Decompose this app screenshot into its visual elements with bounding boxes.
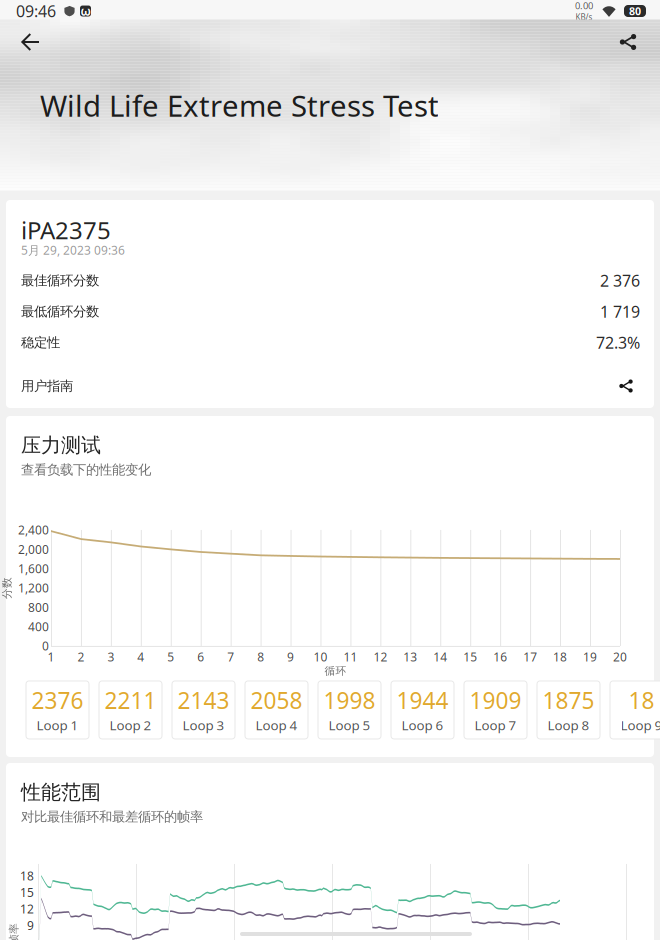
button[interactable]: 2211 — [99, 681, 162, 739]
staticText: 循环 — [324, 664, 346, 677]
staticText: ω — [80, 3, 90, 19]
staticText: 2,400 — [18, 522, 49, 538]
staticText: 18 — [20, 868, 34, 884]
staticText: 查看负载下的性能变化 — [21, 462, 151, 478]
button[interactable]: 用户指南 — [6, 371, 654, 401]
staticText: 1 719 — [600, 301, 640, 322]
staticText: 15 — [463, 649, 477, 665]
staticText: 17 — [523, 649, 537, 665]
staticText: 8 — [257, 649, 264, 665]
staticText: 5 — [167, 649, 174, 665]
button[interactable]: 1998 — [318, 681, 381, 739]
staticText: 80 — [629, 4, 641, 18]
staticText: 6 — [197, 649, 204, 665]
staticText: 0 — [42, 638, 49, 654]
staticText: 5月 29, 2023 09:36 — [21, 242, 125, 258]
staticText: 对比最佳循环和最差循环的帧率 — [21, 809, 203, 825]
staticText: 2 376 — [600, 270, 640, 291]
staticText: 1875 — [542, 685, 594, 715]
staticText: 9 — [287, 649, 294, 665]
staticText: Loop 9 — [620, 716, 660, 734]
staticText: Wild Life Extreme Stress Test — [40, 86, 439, 125]
staticText: KB/s — [575, 12, 592, 22]
staticText: Loop 4 — [255, 716, 297, 734]
staticText: 帧率 — [3, 927, 25, 940]
staticText: 压力测试 — [21, 433, 101, 458]
staticText: 2376 — [31, 685, 83, 715]
staticText: 2143 — [177, 685, 229, 715]
staticText: 最佳循环分数 — [21, 272, 99, 289]
staticText: 1 — [47, 649, 54, 665]
staticText: 0.00 — [575, 0, 593, 12]
staticText: 7 — [227, 649, 234, 665]
staticText: 性能范围 — [21, 780, 101, 805]
staticText: 19 — [583, 649, 597, 665]
staticText: 2211 — [104, 685, 156, 715]
button[interactable]: 2143 — [172, 681, 235, 739]
staticText: 15 — [20, 884, 34, 900]
staticText: 1944 — [396, 685, 448, 715]
staticText: 分数 — [0, 581, 18, 594]
staticText: 2,000 — [18, 541, 49, 557]
staticText: 最低循环分数 — [21, 303, 99, 320]
staticText: 16 — [493, 649, 507, 665]
button[interactable]: 1875 — [537, 681, 600, 739]
staticText: Loop 1 — [36, 716, 78, 734]
staticText: 13 — [403, 649, 417, 665]
staticText: Loop 2 — [109, 716, 151, 734]
staticText: 20 — [613, 649, 627, 665]
staticText: 用户指南 — [21, 378, 73, 394]
staticText: 4 — [137, 649, 144, 665]
staticText: Loop 5 — [328, 716, 370, 734]
staticText: 11 — [343, 649, 357, 665]
staticText: 2058 — [250, 685, 302, 715]
staticText: iPA2375 — [21, 214, 111, 246]
button[interactable]: 2376 — [26, 681, 89, 739]
staticText: 1,600 — [18, 561, 49, 576]
staticText: 09:46 — [16, 0, 56, 22]
button[interactable]: 1944 — [391, 681, 454, 739]
staticText: Loop 3 — [182, 716, 224, 734]
staticText: Loop 8 — [547, 716, 589, 734]
staticText: 1998 — [323, 685, 375, 715]
staticText: 稳定性 — [21, 334, 60, 351]
staticText: Loop 7 — [474, 716, 516, 734]
staticText: 72.3% — [596, 332, 640, 353]
staticText: 12 — [20, 901, 34, 917]
staticText: 400 — [28, 619, 49, 634]
button[interactable]: Share — [606, 22, 650, 62]
staticText: 800 — [28, 599, 49, 615]
staticText: 18 — [628, 685, 654, 715]
button[interactable]: 2058 — [245, 681, 308, 739]
staticText: 1909 — [469, 685, 521, 715]
staticText: Loop 6 — [401, 716, 443, 734]
button[interactable]: Back — [8, 22, 52, 62]
button[interactable]: 1909 — [464, 681, 527, 739]
staticText: 1,200 — [18, 580, 49, 596]
staticText: 18 — [553, 649, 567, 665]
button[interactable]: 18 — [610, 681, 660, 739]
staticText: 3 — [107, 649, 114, 665]
staticText: 10 — [313, 649, 327, 665]
staticText: 14 — [433, 649, 447, 665]
staticText: 2 — [77, 649, 84, 665]
staticText: 9 — [27, 917, 34, 933]
staticText: 12 — [373, 649, 387, 665]
